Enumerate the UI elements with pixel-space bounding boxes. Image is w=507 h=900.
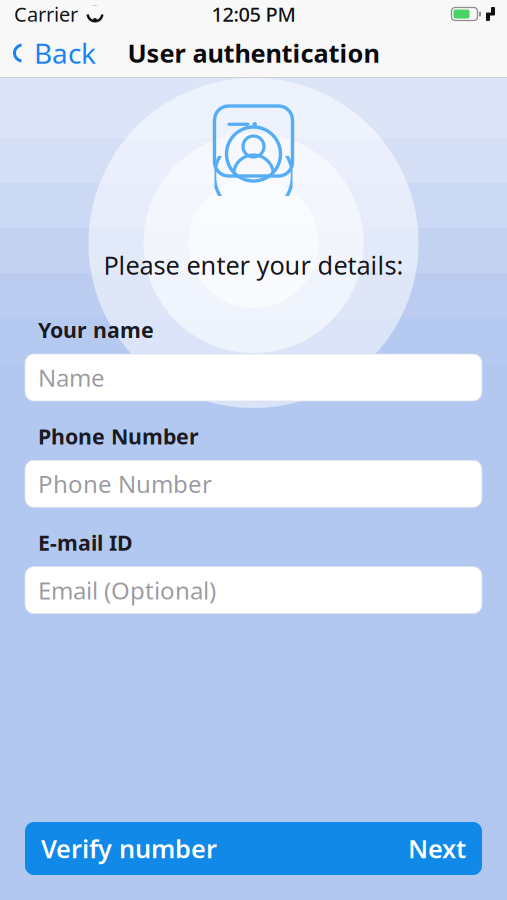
staticText: Next [408,832,466,865]
button[interactable]: Name [25,354,482,401]
staticText: Phone Number [38,422,199,450]
button[interactable]: Verify number [25,822,482,875]
button[interactable]: Phone Number [25,460,482,507]
staticText: Email (Optional) [38,574,216,606]
staticText: Carrier [14,1,78,27]
staticText: Your name [38,316,154,344]
staticText: E-mail ID [38,528,133,557]
button[interactable]: Email (Optional) [25,567,482,614]
staticText: Name [38,361,105,393]
staticText: 12:05 PM [211,1,295,27]
staticText: User authentication [127,36,379,70]
staticText: Please enter your details: [103,248,403,282]
button[interactable]: Back [0,25,108,81]
staticText: Back [34,34,96,72]
staticText: Phone Number [38,468,212,500]
staticText: Verify number [41,832,217,865]
